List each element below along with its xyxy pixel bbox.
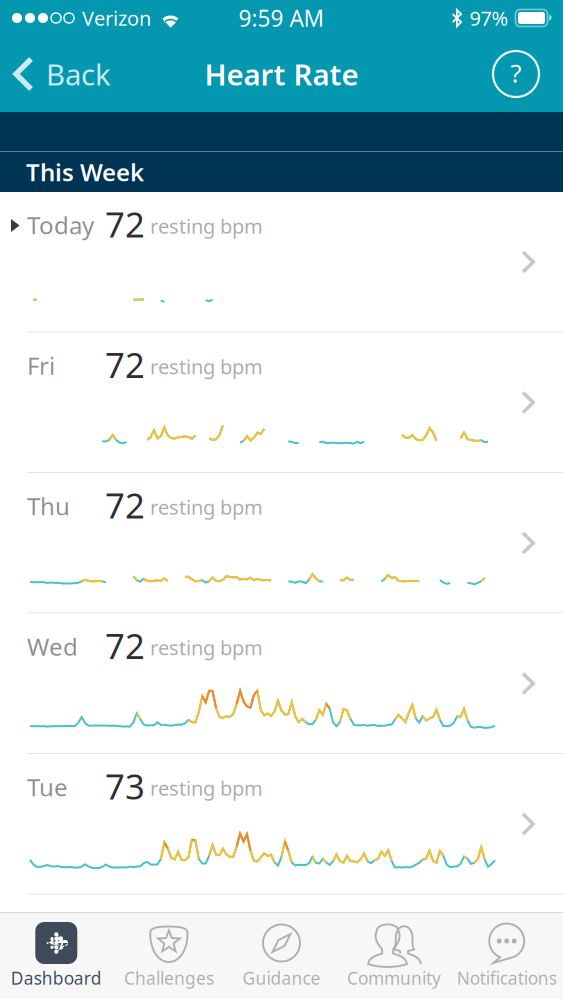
button[interactable]: Community	[338, 913, 450, 999]
staticText: Wed	[27, 631, 78, 662]
staticText: 72	[105, 482, 145, 528]
staticText: Challenges	[124, 966, 214, 989]
button[interactable]: Thu	[0, 473, 563, 613]
staticText: Notifications	[457, 966, 557, 989]
staticText: resting bpm	[150, 353, 263, 380]
staticText: Guidance	[242, 966, 320, 989]
staticText: Today	[27, 209, 94, 241]
staticText: 73	[105, 763, 145, 809]
button[interactable]: Tue	[0, 754, 563, 894]
staticText: 72	[105, 201, 145, 247]
staticText: Tue	[27, 771, 68, 803]
button[interactable]: Today	[0, 192, 563, 332]
button[interactable]: Guidance	[225, 913, 338, 999]
button[interactable]: Wed	[0, 613, 563, 754]
button[interactable]: Dashboard	[0, 913, 113, 999]
staticText: ?	[510, 56, 521, 90]
staticText: This Week	[26, 156, 144, 188]
staticText: Dashboard	[11, 966, 102, 989]
staticText: Thu	[27, 490, 70, 522]
button[interactable]: Help	[481, 42, 563, 106]
staticText: Verizon	[82, 5, 151, 31]
staticText: Heart Rate	[204, 54, 358, 93]
staticText: resting bpm	[150, 494, 263, 520]
staticText: Back	[46, 54, 111, 93]
staticText: 72	[105, 341, 145, 387]
staticText: 97%	[469, 5, 508, 31]
staticText: resting bpm	[150, 775, 263, 801]
staticText: 9:59 AM	[238, 3, 324, 33]
staticText: Fri	[27, 350, 55, 381]
button[interactable]: Fri	[0, 332, 563, 473]
button[interactable]: Notifications	[450, 913, 563, 999]
button[interactable]: Challenges	[113, 913, 225, 999]
staticText: Community	[347, 966, 441, 989]
button[interactable]: Back	[0, 42, 123, 106]
staticText: resting bpm	[150, 213, 263, 239]
staticText: resting bpm	[150, 634, 263, 661]
staticText: 72	[105, 622, 145, 668]
